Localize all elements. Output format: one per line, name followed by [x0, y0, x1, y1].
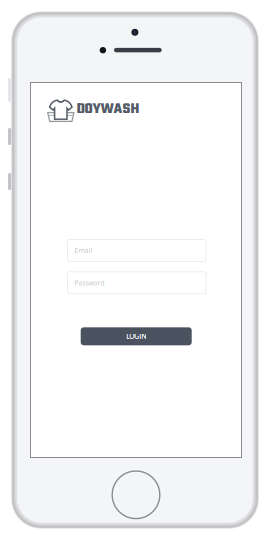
staticText: Email: [74, 246, 92, 255]
button[interactable]: LOGIN: [81, 327, 192, 345]
staticText: DOYWASH: [76, 98, 139, 121]
staticText: Password: [74, 278, 104, 287]
staticText: LOGIN: [126, 332, 146, 340]
